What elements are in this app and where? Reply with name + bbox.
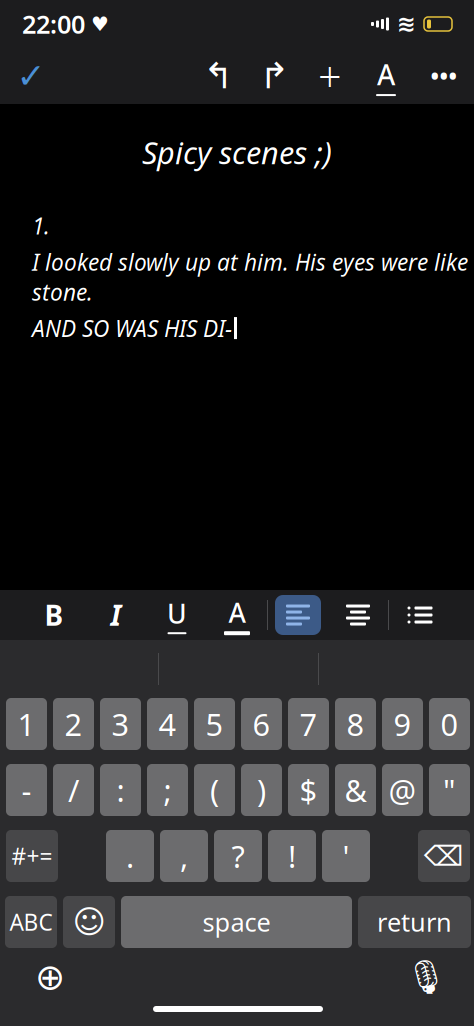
button[interactable]: Align center [328, 592, 388, 638]
button[interactable]: 4 [147, 698, 188, 750]
staticText: 🎙 [405, 958, 447, 996]
button[interactable]: 9 [382, 698, 423, 750]
staticText: / [68, 770, 79, 810]
staticText: Spicy scenes ;) [142, 132, 332, 173]
button[interactable]: 1 [6, 698, 47, 750]
staticText: 0 [440, 704, 458, 744]
staticText: ≋ [397, 11, 416, 37]
button[interactable]: space [121, 896, 352, 948]
staticText: ? [231, 836, 244, 876]
staticText: 9 [393, 704, 411, 744]
button[interactable]: / [53, 764, 94, 816]
staticText: 8 [346, 704, 364, 744]
staticText: ⌫ [424, 840, 464, 872]
button[interactable]: , [160, 830, 208, 882]
staticText: ; [163, 770, 171, 810]
staticText: space [202, 905, 270, 939]
button[interactable]: Bold [23, 592, 85, 638]
staticText: 3 [111, 704, 129, 744]
staticText: ✓ [16, 56, 45, 96]
staticText: 6 [252, 704, 270, 744]
button[interactable]: ! [268, 830, 316, 882]
button[interactable]: Align left [268, 592, 328, 638]
staticText: + [318, 49, 342, 103]
staticText: 7 [299, 704, 317, 744]
button[interactable]: ' [322, 830, 370, 882]
staticText: I [110, 596, 121, 634]
button[interactable]: . [106, 830, 154, 882]
staticText: ↱ [259, 56, 289, 96]
button[interactable]: Text color [207, 592, 267, 638]
button[interactable]: Format [358, 48, 414, 104]
staticText: return [377, 905, 452, 939]
staticText: 1 [17, 704, 35, 744]
staticText: 5 [205, 704, 223, 744]
button[interactable]: Bulleted list [389, 592, 451, 638]
button[interactable]: return [358, 896, 471, 948]
staticText: ⊕ [35, 957, 65, 997]
staticText: - [21, 770, 31, 810]
staticText: 22:00 [22, 7, 85, 41]
button[interactable]: Redo [246, 48, 302, 104]
button[interactable]: Undo [190, 48, 246, 104]
button[interactable]: Add [302, 48, 358, 104]
staticText: ••• [430, 61, 457, 91]
staticText: ( [210, 770, 219, 810]
staticText: @ [388, 770, 416, 810]
staticText: A [228, 595, 245, 630]
staticText: #+= [11, 841, 52, 871]
button[interactable]: ? [214, 830, 262, 882]
button[interactable]: Italic [85, 592, 147, 638]
button[interactable]: Delete [418, 830, 470, 882]
button[interactable]: ABC [5, 896, 57, 948]
staticText: ! [288, 836, 296, 876]
button[interactable]: ) [241, 764, 282, 816]
button[interactable]: Underline [147, 592, 207, 638]
staticText: ABC [9, 907, 52, 937]
button[interactable]: 3 [100, 698, 141, 750]
staticText: A [377, 56, 395, 93]
button[interactable]: 7 [288, 698, 329, 750]
button[interactable]: Done [0, 48, 62, 104]
button[interactable]: @ [382, 764, 423, 816]
button[interactable]: Dictation [397, 952, 455, 1002]
button[interactable]: ; [147, 764, 188, 816]
button[interactable]: 6 [241, 698, 282, 750]
staticText: 4 [158, 704, 176, 744]
staticText: ↰ [203, 56, 233, 96]
button[interactable]: ( [194, 764, 235, 816]
staticText: U [167, 596, 187, 631]
button[interactable]: 8 [335, 698, 376, 750]
staticText: ☺ [72, 904, 105, 940]
button[interactable]: $ [288, 764, 329, 816]
button[interactable]: - [6, 764, 47, 816]
staticText: " [443, 770, 456, 810]
button[interactable]: #+= [6, 830, 58, 882]
staticText: ' [342, 836, 349, 876]
button[interactable]: 0 [429, 698, 470, 750]
staticText: & [344, 770, 366, 810]
staticText: , [180, 836, 188, 876]
staticText: B [44, 596, 63, 634]
staticText: AND SO WAS HIS DI- [32, 313, 232, 343]
button[interactable]: 2 [53, 698, 94, 750]
staticText: 1. [32, 211, 50, 241]
staticText: 2 [64, 704, 82, 744]
button[interactable]: Next keyboard [21, 952, 79, 1002]
button[interactable]: 5 [194, 698, 235, 750]
button[interactable]: " [429, 764, 470, 816]
staticText: $ [299, 770, 317, 810]
staticText: . [126, 836, 134, 876]
button[interactable]: Emoji [63, 896, 115, 948]
staticText: ♥ [91, 13, 109, 35]
button[interactable]: : [100, 764, 141, 816]
staticText: I looked slowly up at him. His eyes were… [32, 247, 468, 307]
button[interactable]: & [335, 764, 376, 816]
staticText: : [116, 770, 124, 810]
button[interactable]: More [414, 48, 474, 104]
staticText: ) [257, 770, 266, 810]
